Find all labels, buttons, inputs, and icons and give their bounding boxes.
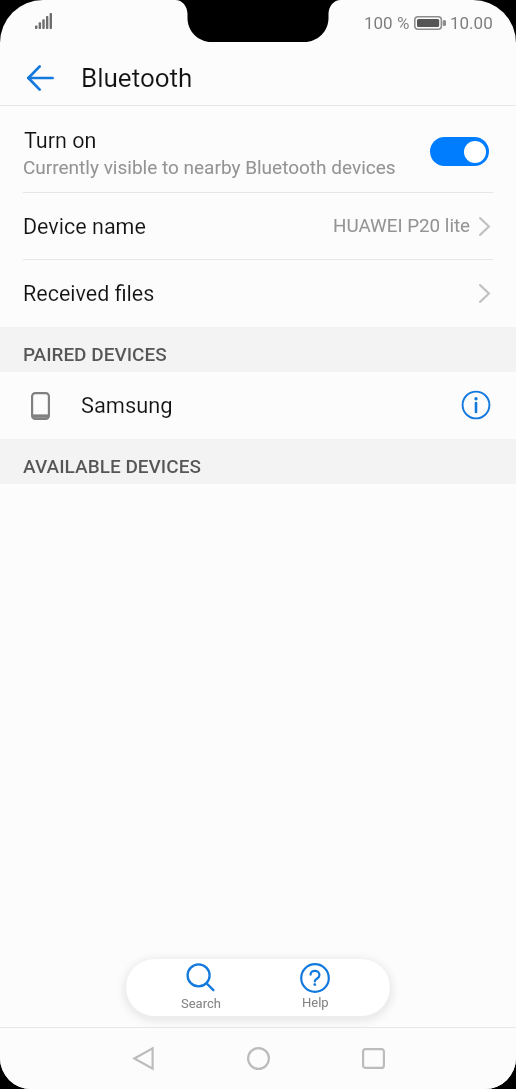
staticText: PAIRED DEVICES	[23, 343, 167, 365]
staticText: 100 %	[364, 13, 410, 33]
staticText: AVAILABLE DEVICES	[23, 455, 201, 477]
button[interactable]: Search	[174, 959, 228, 1016]
staticText: HUAWEI P20 lite	[333, 215, 471, 237]
staticText: Device name	[23, 214, 146, 239]
staticText: 10.00	[450, 13, 493, 33]
button[interactable]: Back	[115, 1028, 171, 1089]
staticText: Samsung	[81, 393, 173, 419]
button[interactable]: Turn on	[0, 106, 516, 192]
staticText: Search	[181, 996, 221, 1011]
staticText: Bluetooth	[81, 63, 193, 93]
button[interactable]: Device name	[0, 193, 516, 259]
button[interactable]: Bluetooth toggle	[430, 137, 489, 166]
button[interactable]: Back	[0, 46, 80, 105]
staticText: Turn on	[24, 128, 97, 153]
button[interactable]: Received files	[0, 260, 516, 327]
button[interactable]: Help	[288, 959, 342, 1015]
staticText: Currently visible to nearby Bluetooth de…	[23, 156, 396, 178]
button[interactable]: Samsung	[0, 372, 516, 439]
button[interactable]: Home	[230, 1028, 286, 1089]
button[interactable]: Recents	[345, 1028, 401, 1089]
staticText: Help	[302, 995, 329, 1010]
button[interactable]: Device info	[454, 383, 498, 427]
staticText: Received files	[23, 281, 155, 306]
